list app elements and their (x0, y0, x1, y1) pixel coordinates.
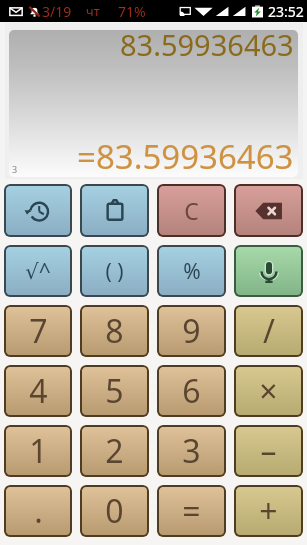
staticText: чт (86, 2, 100, 20)
staticText: 3 (182, 429, 201, 473)
staticText: 71% (118, 2, 146, 21)
button[interactable]: 3 (157, 425, 226, 477)
button[interactable]: 7 (4, 305, 72, 357)
button[interactable]: – (234, 425, 303, 477)
button[interactable]: 2 (80, 425, 149, 477)
staticText: 3/19 (42, 2, 72, 21)
button[interactable]: % (157, 245, 226, 297)
staticText: / (263, 309, 275, 353)
button[interactable]: Clipboard (80, 184, 149, 237)
staticText: √^ (25, 257, 51, 286)
staticText: = (182, 489, 201, 533)
button[interactable]: √^ (4, 245, 72, 297)
staticText: 23:52 (268, 2, 304, 21)
staticText: 6 (182, 369, 201, 413)
staticText: 9 (182, 309, 201, 353)
staticText: % (183, 257, 201, 286)
button[interactable]: 5 (80, 365, 149, 417)
button[interactable]: + (234, 485, 303, 537)
staticText: 3 (12, 163, 18, 175)
staticText: 7 (29, 309, 48, 353)
staticText: 0 (105, 489, 124, 533)
button[interactable]: 1 (4, 425, 72, 477)
button[interactable]: . (4, 485, 72, 537)
staticText: ( ) (105, 257, 124, 286)
staticText: + (259, 489, 278, 533)
button[interactable]: 0 (80, 485, 149, 537)
button[interactable]: 9 (157, 305, 226, 357)
button[interactable]: History (4, 184, 72, 237)
staticText: . (34, 489, 43, 533)
staticText: × (259, 369, 278, 413)
staticText: – (260, 429, 277, 473)
staticText: 83.59936463 (120, 30, 294, 64)
staticText: 1 (29, 429, 48, 473)
button[interactable]: × (234, 365, 303, 417)
button[interactable]: = (157, 485, 226, 537)
button[interactable]: / (234, 305, 303, 357)
staticText: 8 (105, 309, 124, 353)
button[interactable]: C (157, 184, 226, 237)
staticText: =83.59936463 (77, 134, 294, 177)
button[interactable]: Voice input (234, 245, 303, 297)
button[interactable]: 8 (80, 305, 149, 357)
button[interactable]: 4 (4, 365, 72, 417)
staticText: 2 (105, 429, 124, 473)
staticText: C (184, 195, 199, 226)
staticText: 5 (105, 369, 124, 413)
button[interactable]: 6 (157, 365, 226, 417)
button[interactable]: ( ) (80, 245, 149, 297)
staticText: 4 (29, 369, 48, 413)
button[interactable]: Backspace (234, 184, 303, 237)
